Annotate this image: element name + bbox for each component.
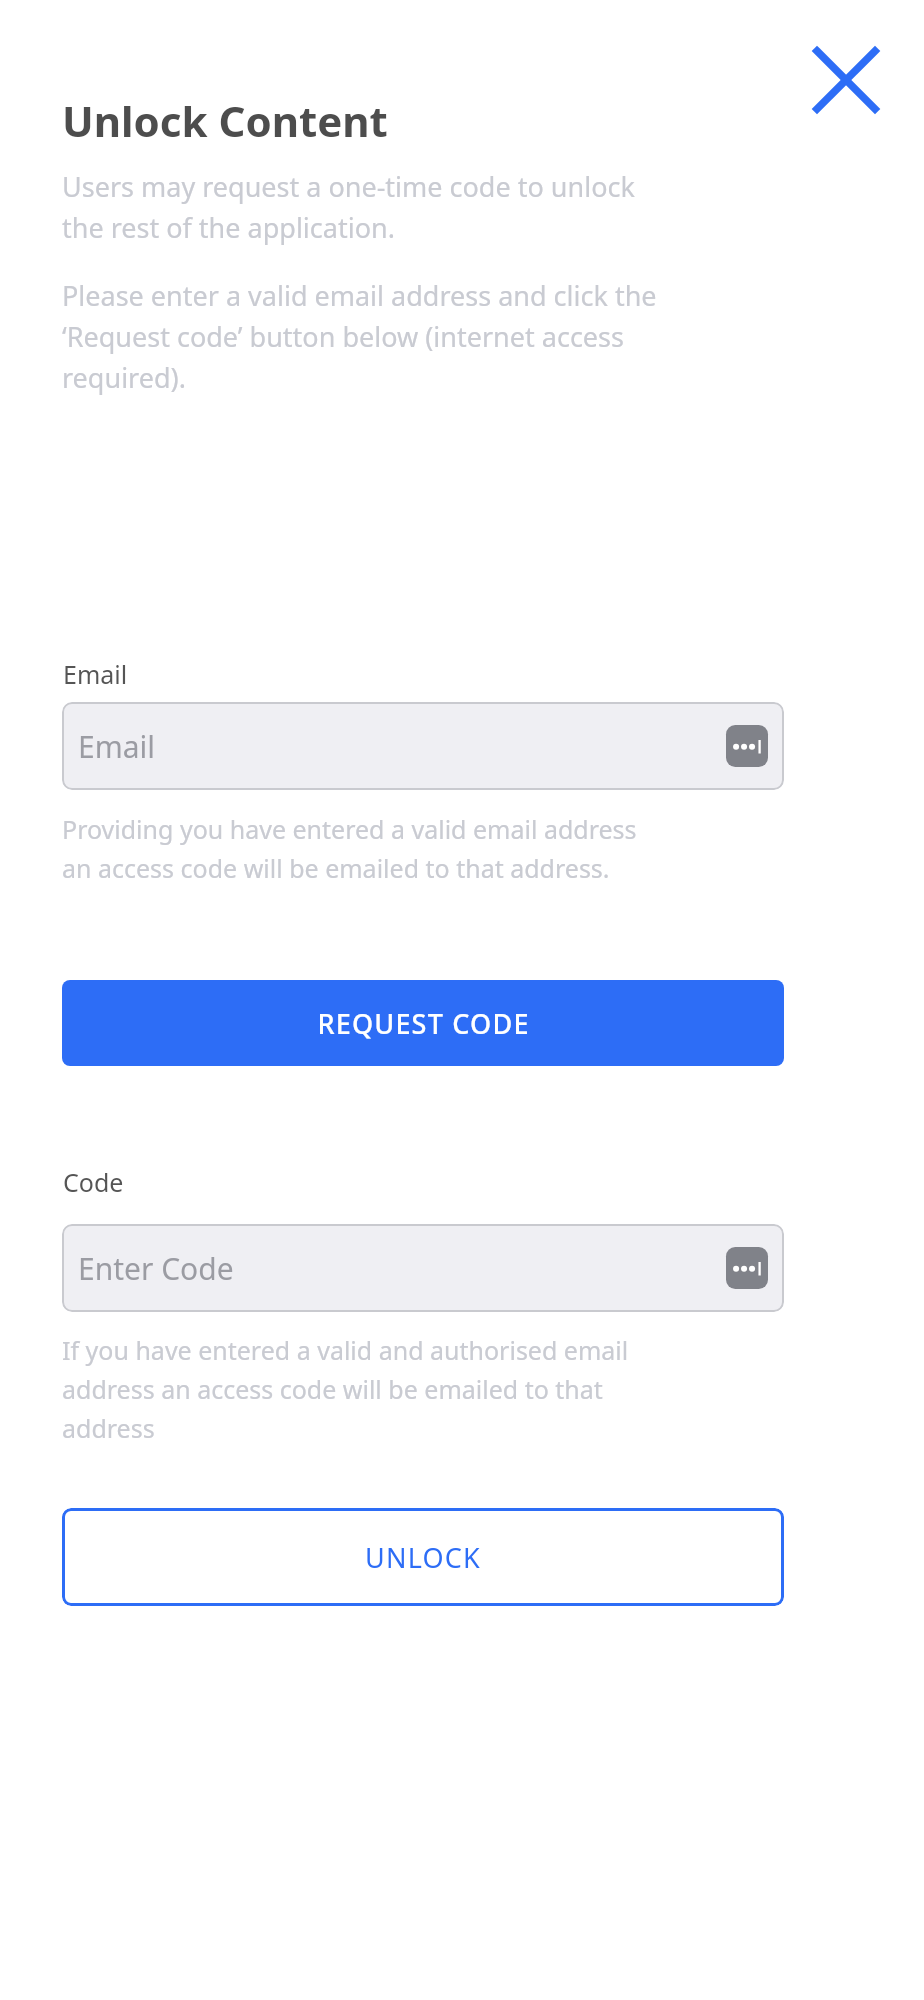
staticText: Code <box>63 1165 124 1199</box>
staticText: If you have entered a valid and authoris… <box>62 1333 682 1445</box>
staticText: Users may request a one-time code to unl… <box>62 168 642 246</box>
staticText: Email <box>63 657 128 691</box>
staticText: Unlock Content <box>62 92 388 149</box>
staticText: Email <box>78 726 156 767</box>
staticText: Please enter a valid email address and c… <box>62 277 662 396</box>
staticText: UNLOCK <box>365 1539 481 1576</box>
button[interactable]: REQUEST CODE <box>62 980 784 1066</box>
button[interactable]: Code input field <box>62 1224 784 1312</box>
staticText: Providing you have entered a valid email… <box>62 812 672 885</box>
staticText: Enter Code <box>78 1248 234 1289</box>
button[interactable]: UNLOCK <box>62 1508 784 1606</box>
staticText: REQUEST CODE <box>317 1005 530 1042</box>
button[interactable]: Email input field <box>62 702 784 790</box>
button[interactable]: Close <box>798 32 894 128</box>
